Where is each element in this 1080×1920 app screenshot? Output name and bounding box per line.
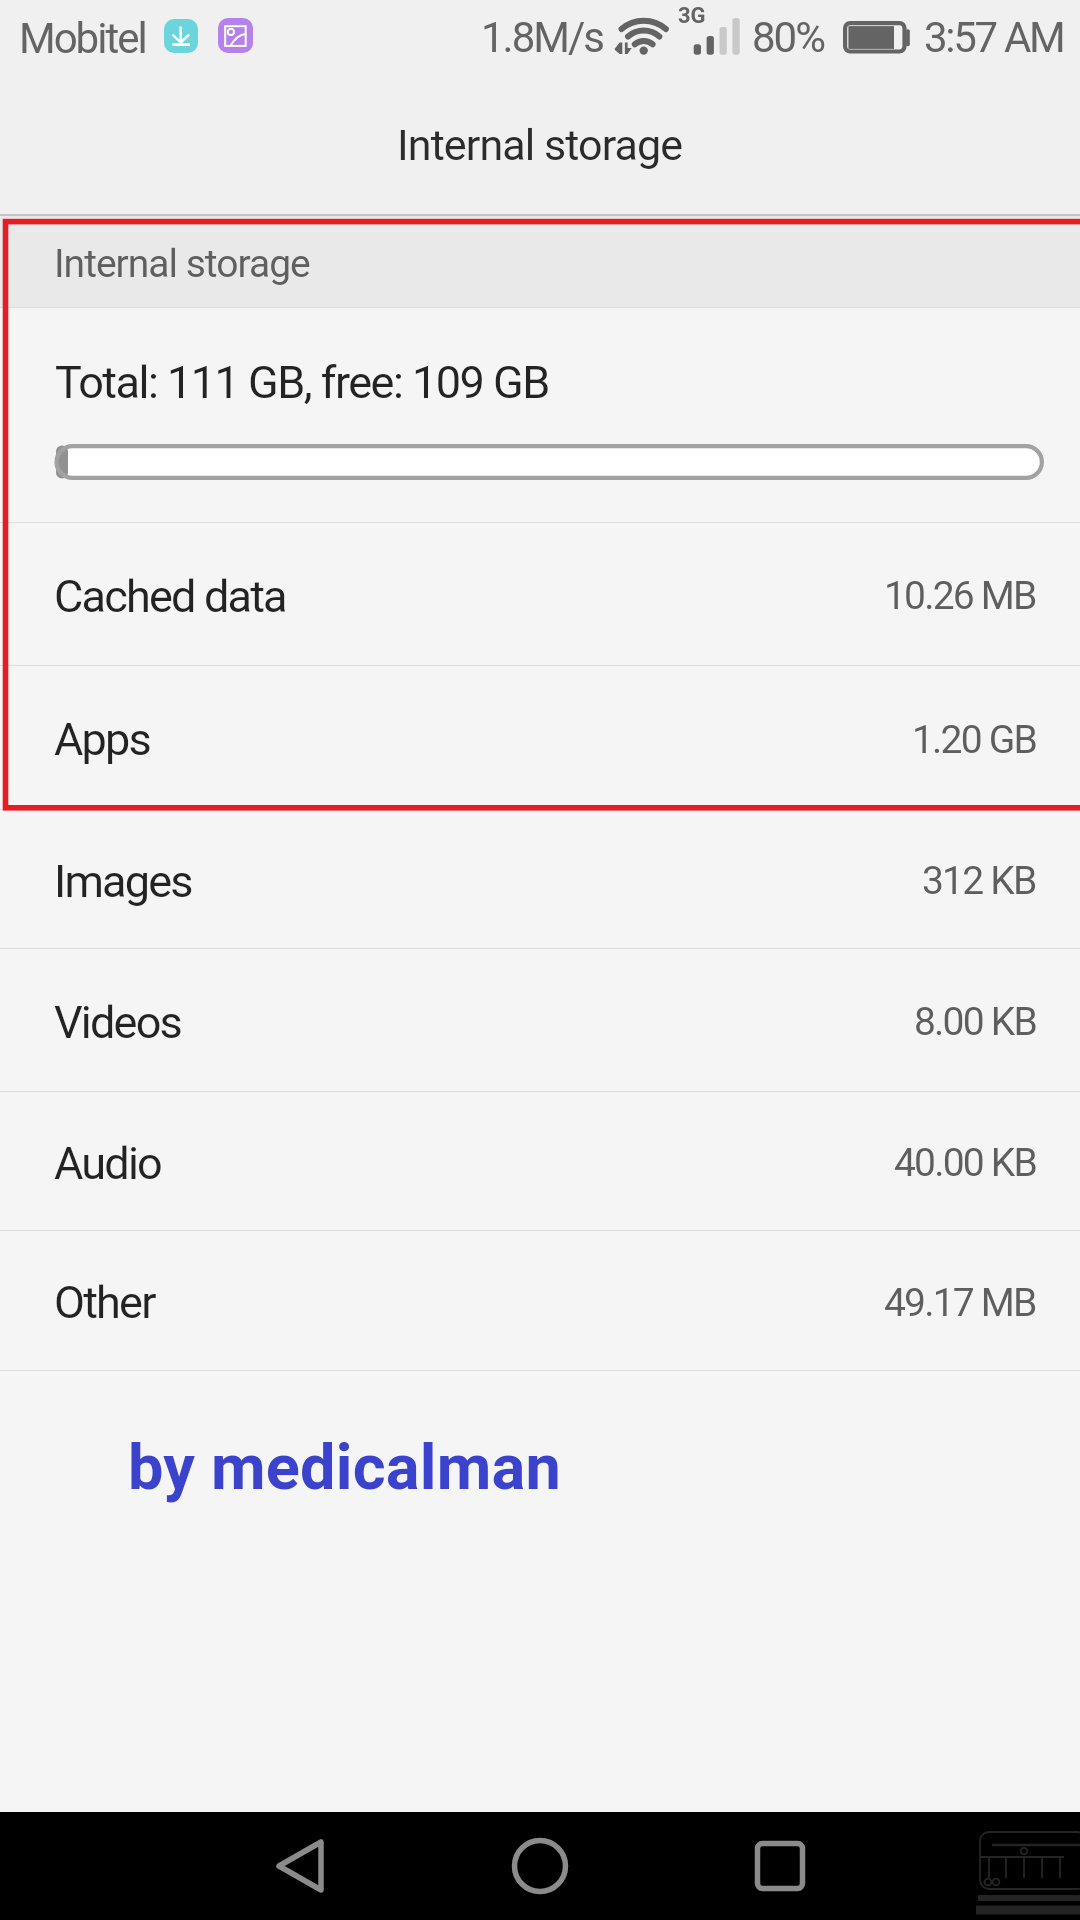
button[interactable]: Apps [0,666,1080,809]
button[interactable]: Other [0,1231,1080,1370]
button[interactable]: Audio [0,1092,1080,1230]
staticText: 3:57 AM [924,13,1064,62]
staticText: 49.17 MB [884,1280,1036,1326]
staticText: by medicalman [128,1431,561,1505]
staticText: Other [54,1276,155,1329]
staticText: 312 KB [922,858,1036,904]
staticText: Mobitel [19,14,146,63]
staticText: 1.8M/s [481,13,603,62]
staticText: Apps [54,713,150,766]
button[interactable]: Recent apps [720,1812,840,1920]
staticText: Internal storage [54,241,310,287]
staticText: 10.26 MB [884,573,1036,619]
button[interactable]: Cached data [0,523,1080,665]
button[interactable]: Home [480,1812,600,1920]
staticText: Audio [54,1137,161,1190]
staticText: Videos [54,996,181,1049]
staticText: 80% [752,13,824,62]
staticText: Total: 111 GB, free: 109 GB [55,356,549,409]
button[interactable]: Images [0,810,1080,948]
staticText: 3G [678,3,706,29]
staticText: Images [54,855,192,908]
button[interactable]: Back [240,1812,360,1920]
staticText: Internal storage [397,120,683,170]
staticText: Cached data [54,570,286,623]
staticText: 8.00 KB [914,999,1036,1045]
staticText: 40.00 KB [894,1140,1036,1186]
staticText: 1.20 GB [912,717,1036,763]
button[interactable]: Videos [0,949,1080,1091]
